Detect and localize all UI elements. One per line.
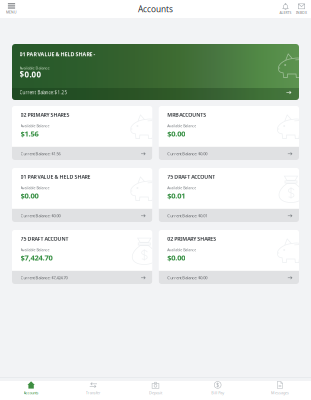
button[interactable]: Menu <box>3 0 19 18</box>
button[interactable]: 01 PAR VALUE & HELD SHARE <box>12 168 152 222</box>
staticText: Available Balance <box>20 185 49 190</box>
staticText: Current Balance: $0.00 <box>167 275 207 280</box>
staticText: $0.00 <box>19 69 41 80</box>
staticText: $1.56 <box>20 129 38 139</box>
staticText: Current Balance: $0.00 <box>167 151 207 156</box>
staticText: $0.01 <box>167 191 185 201</box>
staticText: Current Balance: $7,424.70 <box>20 275 67 280</box>
button[interactable]: 75 DRAFT ACCOUNT <box>12 230 152 284</box>
staticText: Messages <box>271 390 289 395</box>
staticText: Transfer <box>86 390 101 395</box>
button[interactable]: Alerts <box>278 0 293 18</box>
button[interactable]: 75 DRAFT ACCOUNT <box>159 168 299 222</box>
button[interactable]: Bill Pay <box>187 378 249 395</box>
button[interactable]: Transfer <box>62 378 124 395</box>
button[interactable]: Inbox <box>294 0 309 18</box>
button[interactable]: MRB ACCOUNTS <box>159 106 299 160</box>
staticText: $0.00 <box>20 191 38 201</box>
staticText: 02 PRIMARY SHARES <box>167 235 216 242</box>
staticText: INBOX <box>296 10 307 15</box>
staticText: 02 PRIMARY SHARES <box>20 111 69 118</box>
button[interactable]: 01 PAR VALUE & HELD SHARE - <box>12 44 299 100</box>
staticText: 75 DRAFT ACCOUNT <box>20 235 68 242</box>
staticText: 01 PAR VALUE & HELD SHARE - <box>19 50 95 58</box>
staticText: Current Balance: $1.56 <box>20 151 60 156</box>
staticText: Current Balance: $0.01 <box>167 213 207 218</box>
button[interactable]: 02 PRIMARY SHARES <box>159 230 299 284</box>
staticText: 75 DRAFT ACCOUNT <box>167 173 215 180</box>
staticText: MENU <box>6 10 17 15</box>
staticText: Available Balance <box>167 247 196 252</box>
staticText: 01 PAR VALUE & HELD SHARE <box>20 173 90 180</box>
staticText: Deposit <box>149 390 162 395</box>
staticText: $0.00 <box>167 129 185 139</box>
button[interactable]: Deposit <box>124 378 187 395</box>
button[interactable]: 02 PRIMARY SHARES <box>12 106 152 160</box>
staticText: Current Balance: $0.00 <box>20 213 60 218</box>
staticText: Available Balance <box>20 123 49 128</box>
staticText: Available Balance <box>167 185 196 190</box>
button[interactable]: Accounts <box>0 378 62 395</box>
staticText: Available Balance <box>19 65 49 71</box>
staticText: MRB ACCOUNTS <box>167 111 206 118</box>
staticText: Accounts <box>24 390 39 395</box>
button[interactable]: Messages <box>249 378 311 395</box>
staticText: Accounts <box>138 3 173 15</box>
staticText: $0.00 <box>167 253 185 263</box>
staticText: $7,424.70 <box>20 253 52 263</box>
staticText: Current Balance: $1.25 <box>19 89 67 95</box>
staticText: Available Balance <box>20 247 49 252</box>
staticText: Available Balance <box>167 123 196 128</box>
staticText: Bill Pay <box>211 390 224 395</box>
staticText: ALERTS <box>279 10 291 15</box>
